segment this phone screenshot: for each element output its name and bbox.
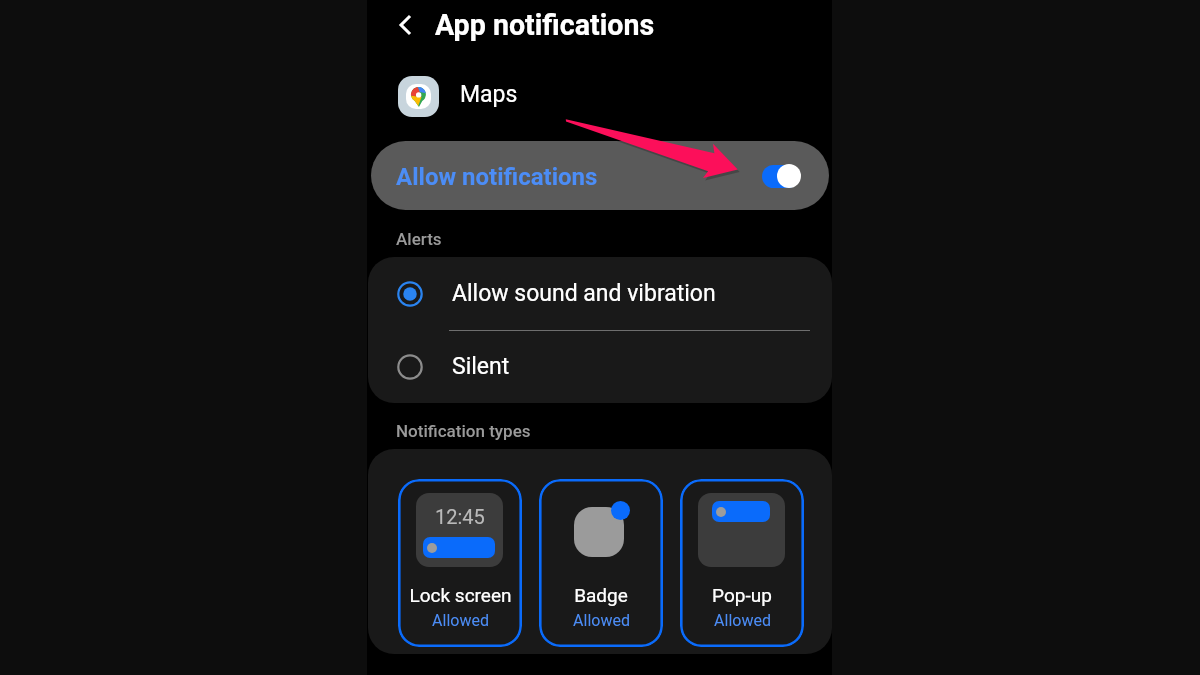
button[interactable]: Allow notifications [371,141,829,210]
staticText: App notifications [435,8,655,42]
staticText: Allow sound and vibration [452,280,716,307]
staticText: Notification types [396,421,531,441]
button[interactable]: Allow notifications toggle, on [762,164,799,188]
staticText: Allowed [432,611,489,630]
staticText: Pop-up [712,584,772,606]
staticText: Allow notifications [396,163,598,191]
button[interactable]: Back [382,2,428,48]
button[interactable]: Silent [368,330,832,403]
staticText: Alerts [396,229,442,249]
staticText: Allowed [573,611,630,630]
button[interactable]: Badge [539,479,663,647]
button[interactable]: Pop-up [680,479,804,647]
staticText: 12:45 [435,505,485,528]
staticText: Silent [452,353,510,380]
button[interactable]: 12:45 [398,479,522,647]
staticText: Badge [574,584,628,606]
staticText: Lock screen [409,584,512,606]
button[interactable]: Allow sound and vibration [368,257,832,330]
staticText: Allowed [714,611,771,630]
staticText: Maps [460,81,518,108]
